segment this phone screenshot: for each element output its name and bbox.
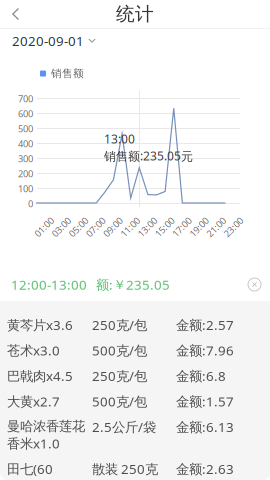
staticText: 金额:2.63: [176, 460, 234, 478]
staticText: 01:00: [32, 221, 55, 233]
staticText: 500: [18, 122, 33, 135]
staticText: 额:￥235.05: [96, 276, 170, 293]
staticText: 金额:1.57: [176, 392, 234, 410]
button[interactable]: 巴戟肉x4.5: [0, 361, 270, 386]
staticText: 2.5公斤/袋: [92, 418, 156, 436]
staticText: 07:00: [84, 221, 107, 233]
staticText: 400: [18, 137, 33, 150]
button[interactable]: Back: [0, 0, 32, 28]
staticText: 13:00: [136, 221, 159, 233]
staticText: 黄芩片x3.6: [7, 316, 73, 334]
staticText: 250克/包: [92, 367, 147, 385]
staticText: 600: [18, 107, 33, 120]
staticText: 09:00: [101, 221, 124, 233]
staticText: 金额:2.57: [176, 316, 234, 334]
button[interactable]: Close: [247, 277, 262, 292]
staticText: 13:00: [104, 131, 135, 147]
button[interactable]: 田七(60头)x6.0: [0, 454, 270, 479]
staticText: 巴戟肉x4.5: [7, 367, 73, 385]
staticText: 21:00: [205, 221, 228, 233]
staticText: 苍术x3.0: [7, 341, 60, 359]
staticText: 05:00: [67, 221, 90, 233]
staticText: 200: [18, 167, 33, 180]
staticText: 销售额: [51, 67, 84, 80]
staticText: 17:00: [170, 221, 193, 233]
staticText: 2020-09-01: [12, 32, 84, 50]
staticText: 300: [18, 152, 33, 165]
staticText: 田七(60头)x6.0: [7, 460, 53, 480]
staticText: 11:00: [119, 221, 142, 233]
staticText: 12:00-13:00: [11, 276, 87, 293]
staticText: 散装 250克: [92, 460, 158, 478]
staticText: 金额:6.8: [176, 367, 226, 385]
staticText: 大黄x2.7: [7, 392, 60, 410]
staticText: 0: [28, 197, 33, 210]
staticText: 100: [18, 182, 33, 195]
staticText: 500克/包: [92, 341, 147, 359]
button[interactable]: 苍术x3.0: [0, 335, 270, 361]
staticText: 15:00: [153, 221, 176, 233]
staticText: 销售额:235.05元: [104, 148, 193, 164]
staticText: 250克/包: [92, 316, 147, 334]
button[interactable]: 2020-09-01: [0, 27, 96, 55]
staticText: 700: [18, 92, 33, 105]
staticText: 03:00: [50, 221, 73, 233]
staticText: 曼哈浓香莲花香米x1.0: [7, 418, 85, 452]
staticText: 金额:6.13: [176, 418, 234, 436]
staticText: 19:00: [187, 221, 210, 233]
staticText: 金额:7.96: [176, 341, 234, 359]
button[interactable]: 曼哈浓香莲花香米x1.0: [0, 412, 270, 454]
staticText: 统计: [116, 2, 154, 25]
button[interactable]: 黄芩片x3.6: [0, 310, 270, 335]
staticText: 23:00: [222, 221, 245, 233]
button[interactable]: 大黄x2.7: [0, 386, 270, 412]
staticText: 500克/包: [92, 392, 147, 410]
